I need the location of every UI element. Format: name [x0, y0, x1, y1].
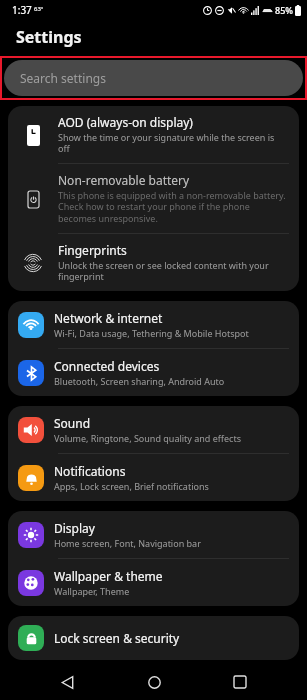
button[interactable]: Non-removable battery: [8, 164, 299, 233]
staticText: Apps, Lock screen, Brief notifications: [54, 480, 209, 492]
staticText: This phone is equipped with a non-remova…: [58, 189, 287, 225]
staticText: Volume, Ringtone, Sound quality and effe…: [54, 432, 241, 444]
staticText: Show the time or your signature while th…: [58, 131, 287, 155]
staticText: Search settings: [20, 70, 106, 86]
button[interactable]: Notifications: [8, 454, 299, 501]
button[interactable]: Network & internet: [8, 301, 299, 348]
button[interactable]: Search settings: [4, 60, 303, 96]
button[interactable]: Back: [47, 664, 87, 700]
button[interactable]: Fingerprints: [8, 234, 299, 291]
button[interactable]: Wallpaper & theme: [8, 559, 299, 606]
button[interactable]: Sound: [8, 406, 299, 453]
staticText: Wallpaper, Theme: [54, 585, 130, 597]
button[interactable]: Display: [8, 511, 299, 558]
staticText: Display: [54, 520, 95, 536]
staticText: Connected devices: [54, 358, 160, 374]
staticText: 63°: [34, 5, 44, 13]
staticText: Fingerprints: [58, 242, 127, 258]
staticText: Non-removable battery: [58, 172, 190, 188]
button[interactable]: Connected devices: [8, 349, 299, 396]
button[interactable]: AOD (always-on display): [8, 106, 299, 163]
staticText: Settings: [16, 26, 82, 48]
button[interactable]: Lock screen & security: [8, 616, 299, 660]
staticText: 1:37: [12, 3, 32, 17]
staticText: 85%: [275, 4, 293, 16]
staticText: Unlock the screen or see locked content …: [58, 259, 287, 283]
staticText: Lock screen & security: [54, 630, 180, 646]
button[interactable]: Home: [134, 664, 174, 700]
staticText: Sound: [54, 415, 91, 431]
staticText: Home screen, Font, Navigation bar: [54, 537, 201, 549]
staticText: Notifications: [54, 463, 126, 479]
staticText: AOD (always-on display): [58, 114, 193, 130]
staticText: Bluetooth, Screen sharing, Android Auto: [54, 375, 225, 387]
button[interactable]: Recent apps: [220, 664, 260, 700]
staticText: Wallpaper & theme: [54, 568, 163, 584]
staticText: Network & internet: [54, 310, 163, 326]
staticText: Wi-Fi, Data usage, Tethering & Mobile Ho…: [54, 327, 249, 339]
